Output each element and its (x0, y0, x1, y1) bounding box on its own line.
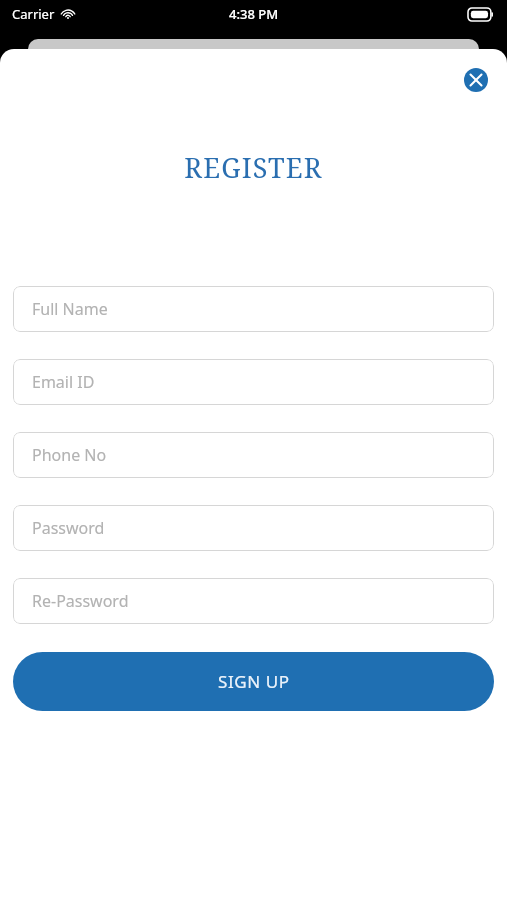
staticText: REGISTER (184, 149, 323, 186)
staticText: SIGN UP (218, 670, 290, 693)
staticText: Email ID (32, 371, 95, 393)
button[interactable]: Close (464, 68, 488, 92)
staticText: 4:38 PM (229, 5, 279, 23)
staticText: Phone No (32, 444, 107, 466)
staticText: Password (32, 517, 105, 539)
staticText: Re-Password (32, 590, 129, 612)
button[interactable]: SIGN UP (13, 652, 494, 711)
staticText: Carrier (12, 5, 55, 23)
button[interactable]: Password (13, 505, 494, 551)
button[interactable]: Email ID (13, 359, 494, 405)
button[interactable]: Phone No (13, 432, 494, 478)
button[interactable]: Full Name (13, 286, 494, 332)
button[interactable]: Re-Password (13, 578, 494, 624)
staticText: Full Name (32, 298, 108, 320)
